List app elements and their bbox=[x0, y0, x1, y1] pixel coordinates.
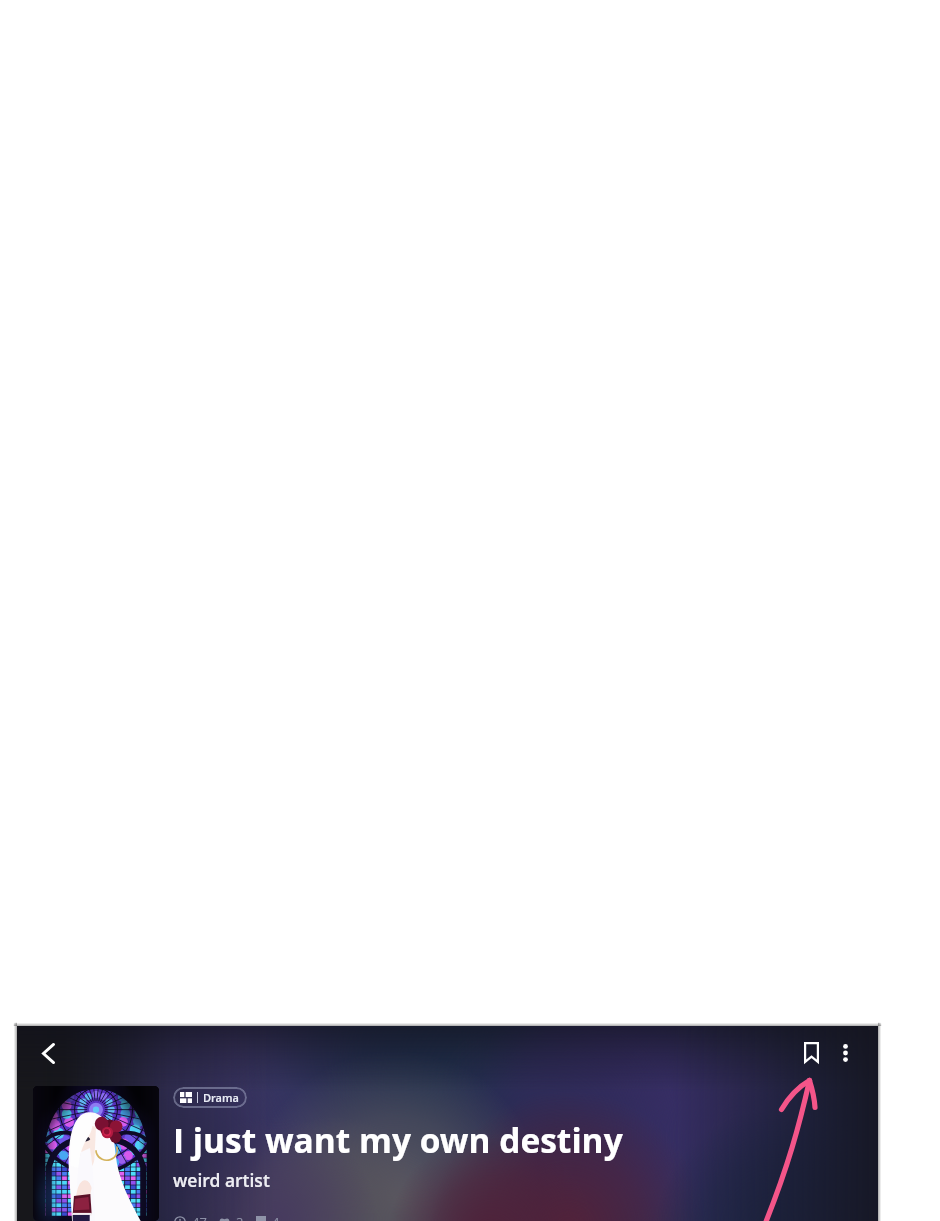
button[interactable]: More options bbox=[823, 1031, 867, 1075]
staticText: Drama bbox=[203, 1090, 239, 1105]
staticText: weird artist bbox=[173, 1168, 270, 1192]
staticText: 4 bbox=[272, 1213, 280, 1221]
staticText: 3 bbox=[236, 1213, 244, 1221]
staticText: 47 bbox=[192, 1213, 207, 1221]
button[interactable]: weird artist bbox=[173, 1168, 270, 1192]
button[interactable]: Back bbox=[26, 1031, 70, 1075]
staticText: I just want my own destiny bbox=[173, 1117, 623, 1163]
button[interactable]: Bookmark bbox=[789, 1030, 833, 1074]
button[interactable]: I just want my own destiny bbox=[173, 1117, 623, 1163]
button[interactable]: Drama bbox=[173, 1087, 247, 1108]
button[interactable]: Cover art bbox=[33, 1086, 159, 1221]
